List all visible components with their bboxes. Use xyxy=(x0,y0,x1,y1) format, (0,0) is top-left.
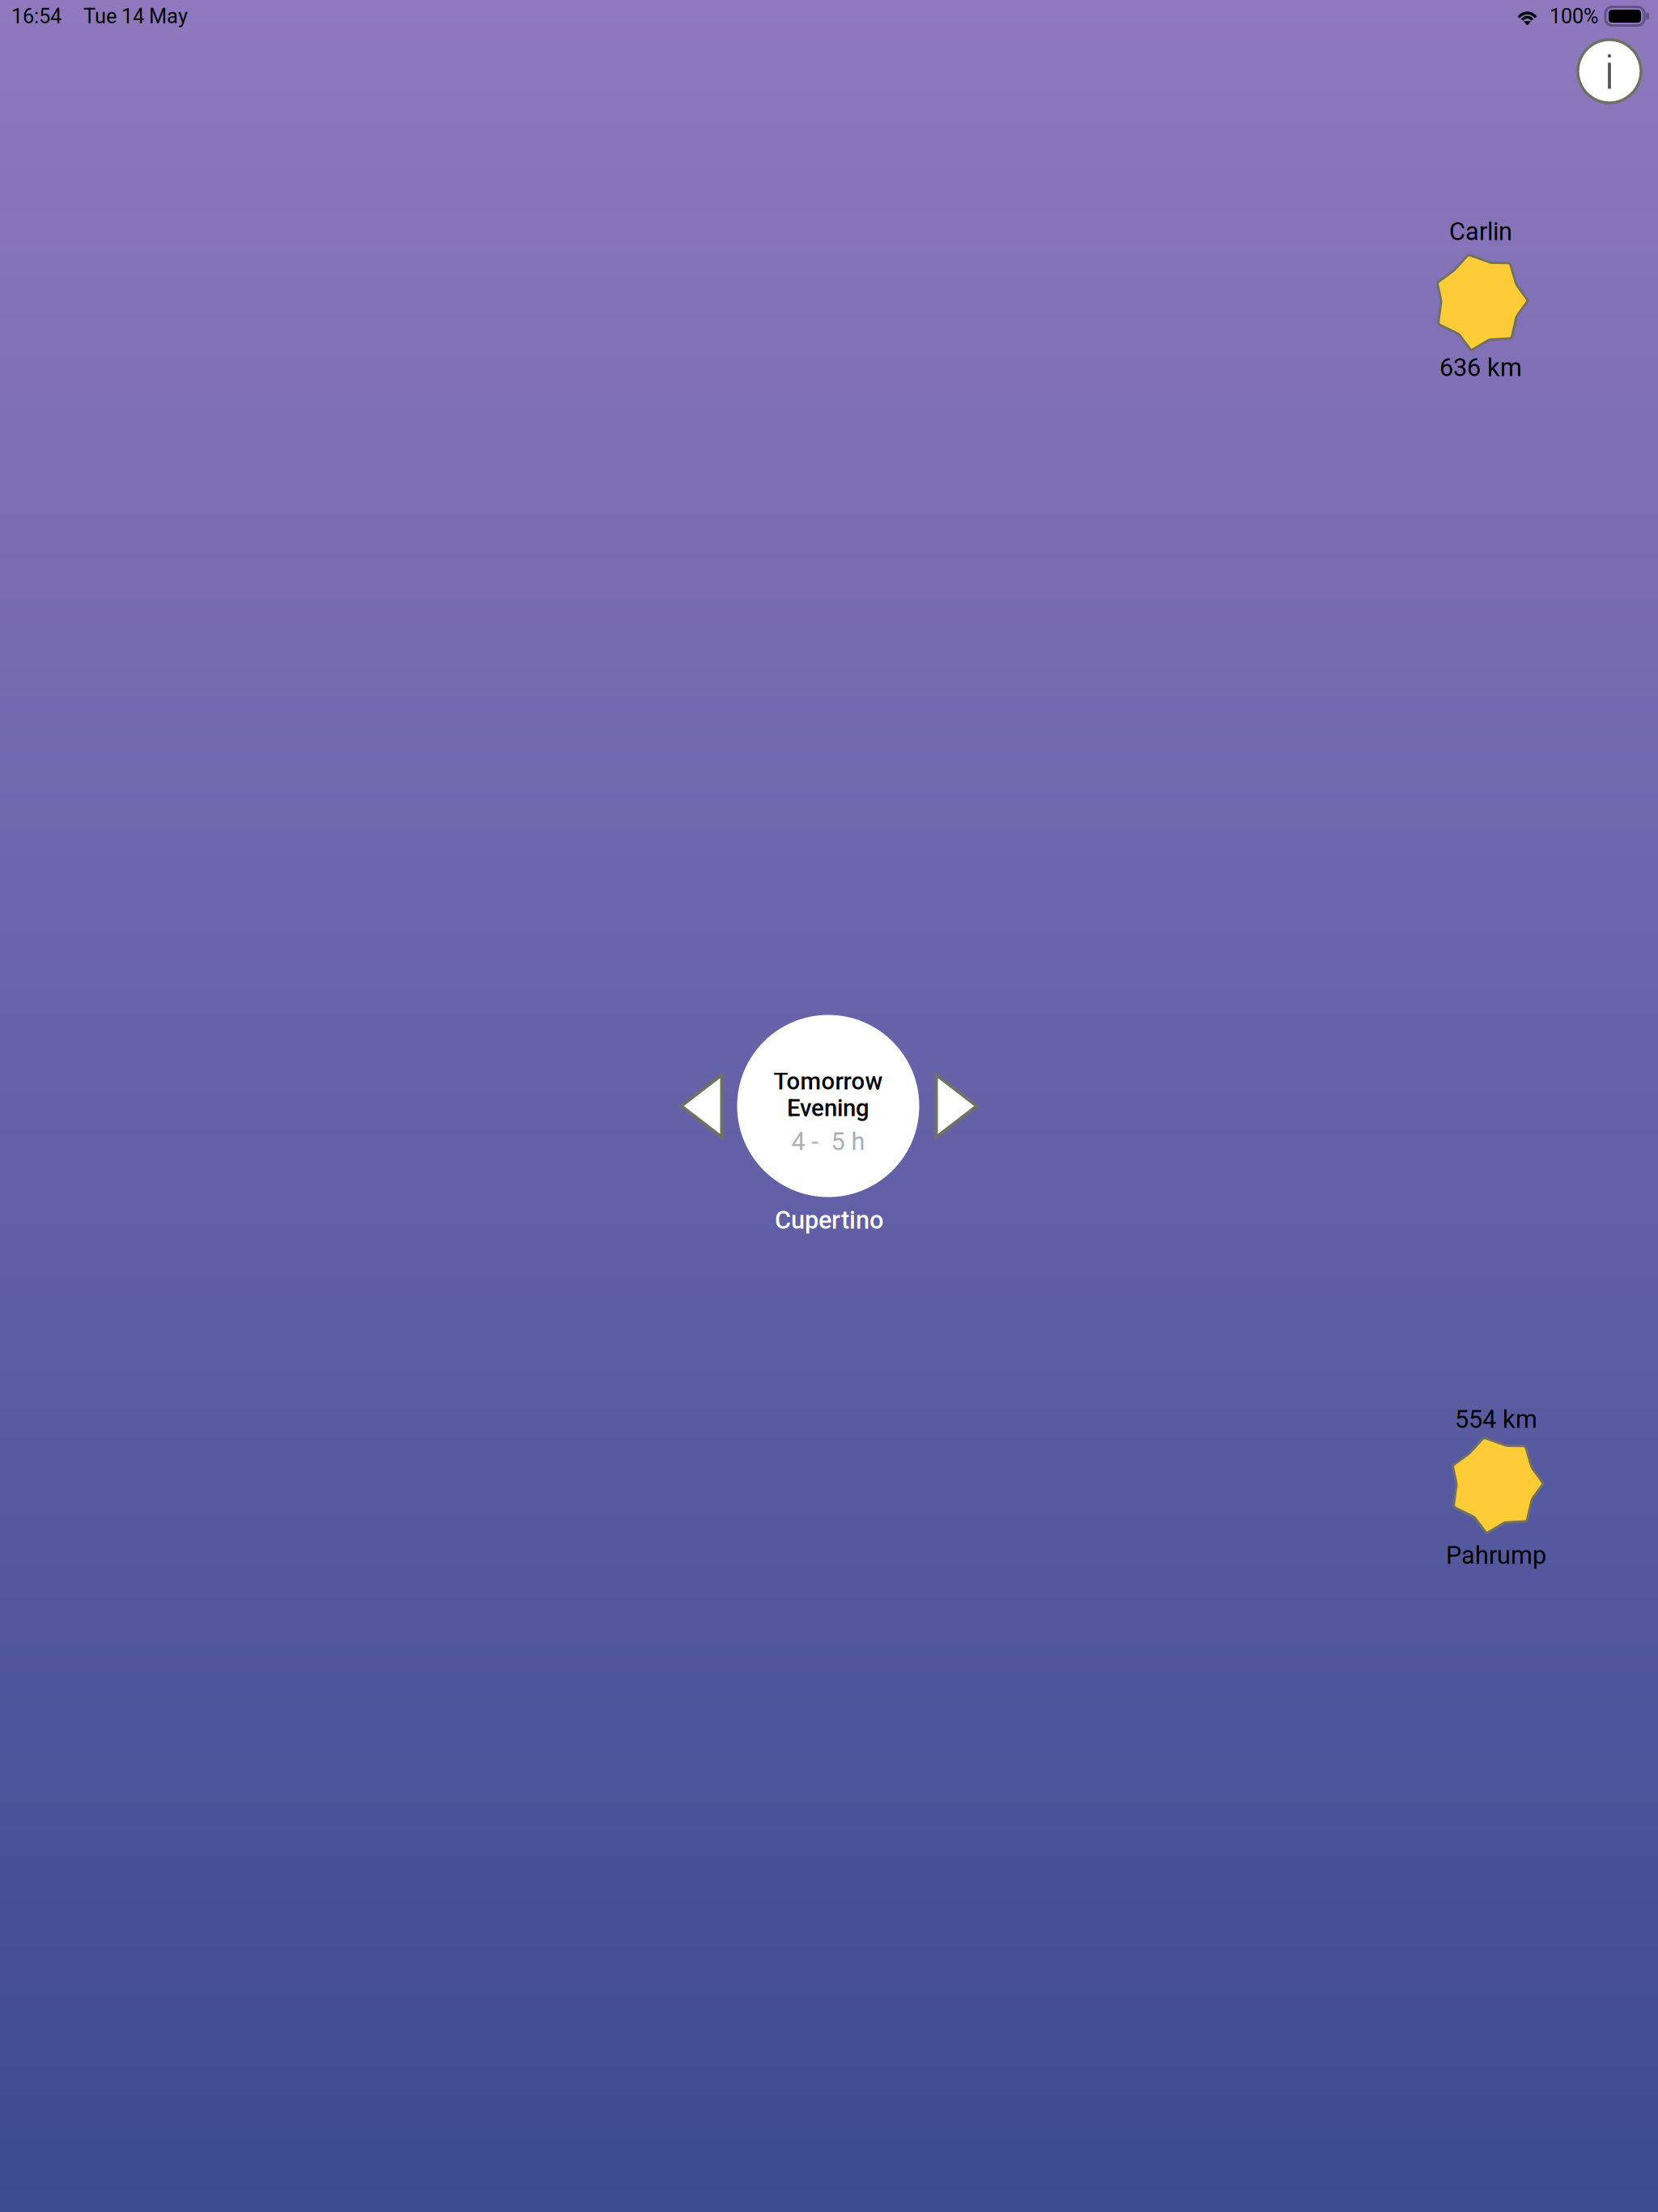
staticText: 16:54 xyxy=(11,4,62,28)
staticText: Carlin xyxy=(1449,217,1512,246)
staticText: Pahrump xyxy=(1446,1541,1546,1570)
staticText: 636 km xyxy=(1439,353,1522,382)
button[interactable]: Previous period xyxy=(681,1075,722,1137)
staticText: 4 - 5 h xyxy=(791,1127,865,1156)
button[interactable]: Next period xyxy=(936,1075,977,1137)
staticText: Tomorrow xyxy=(774,1067,883,1095)
button[interactable]: Tomorrow xyxy=(737,1015,919,1197)
button[interactable]: Info xyxy=(1573,35,1646,108)
staticText: Evening xyxy=(787,1094,869,1122)
staticText: 554 km xyxy=(1455,1405,1537,1434)
staticText: 100% xyxy=(1550,4,1599,28)
staticText: Tue 14 May xyxy=(83,4,188,28)
staticText: Cupertino xyxy=(775,1206,883,1235)
